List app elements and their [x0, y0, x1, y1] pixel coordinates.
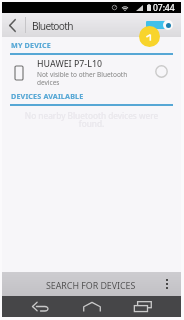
- button[interactable]: Home: [74, 296, 110, 317]
- staticText: SEARCH FOR DEVICES: [46, 279, 136, 291]
- button[interactable]: Step 1 callout: [139, 26, 160, 47]
- button[interactable]: HUAWEI P7-L10: [2, 55, 181, 91]
- staticText: Bluetooth: [32, 19, 73, 33]
- staticText: HUAWEI P7-L10: [37, 58, 102, 70]
- button[interactable]: More options: [160, 272, 181, 296]
- button[interactable]: Bluetooth toggle: [146, 18, 173, 32]
- button[interactable]: Device settings: [152, 62, 170, 80]
- staticText: DEVICES AVAILABLE: [11, 91, 84, 101]
- button[interactable]: Recent apps: [125, 296, 161, 317]
- button[interactable]: Back: [2, 13, 23, 37]
- staticText: No nearby Bluetooth devices were found.: [2, 110, 181, 130]
- button[interactable]: SEARCH FOR DEVICES: [2, 272, 181, 296]
- staticText: Not visible to other Bluetooth devices: [37, 70, 128, 87]
- staticText: MY DEVICE: [11, 40, 51, 50]
- staticText: 07:44: [153, 2, 175, 13]
- button[interactable]: Back: [22, 296, 58, 317]
